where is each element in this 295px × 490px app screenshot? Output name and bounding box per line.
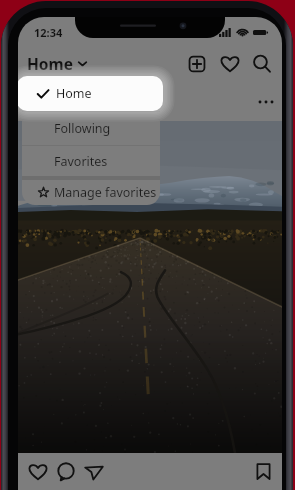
button[interactable]: Favorites [22,146,160,176]
button[interactable]: Home [23,50,92,77]
staticText: Following [54,120,111,137]
staticText: 12:34 [34,25,63,40]
button[interactable]: Notifications [219,53,241,75]
staticText: Home [56,85,92,102]
button[interactable]: Like [27,461,49,483]
button[interactable]: Search [251,53,273,75]
staticText: Home [54,86,90,103]
button[interactable]: Home [18,76,163,111]
staticText: Favorites [54,153,108,170]
button[interactable]: Share [83,461,105,483]
button[interactable]: More options [256,92,276,112]
button[interactable]: Manage favorites [22,180,160,205]
button[interactable]: Following [22,112,160,145]
button[interactable]: Comment [55,461,77,483]
staticText: Home [27,53,73,74]
button[interactable]: Create new post [186,53,208,75]
button[interactable]: Home [22,77,160,111]
staticText: Manage favorites [54,184,157,201]
button[interactable]: Save [253,461,274,482]
